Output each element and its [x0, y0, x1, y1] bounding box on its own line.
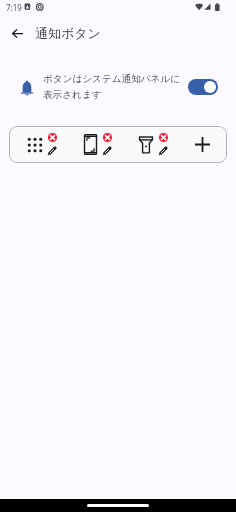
button[interactable]: Toggle notification buttons — [188, 79, 218, 95]
button[interactable]: Edit flashlight button — [120, 126, 175, 163]
button[interactable]: Edit app grid button — [9, 126, 64, 163]
button[interactable]: Edit screenshot button — [64, 126, 119, 163]
staticText: 7:19 — [6, 2, 22, 13]
button[interactable]: Back — [3, 19, 31, 47]
button[interactable]: Add button — [176, 126, 227, 163]
button[interactable]: ボタンはシステム通知パネルに表示されます — [0, 64, 236, 110]
staticText: 通知ボタン — [35, 25, 101, 41]
staticText: ボタンはシステム通知パネルに表示されます — [43, 73, 181, 100]
